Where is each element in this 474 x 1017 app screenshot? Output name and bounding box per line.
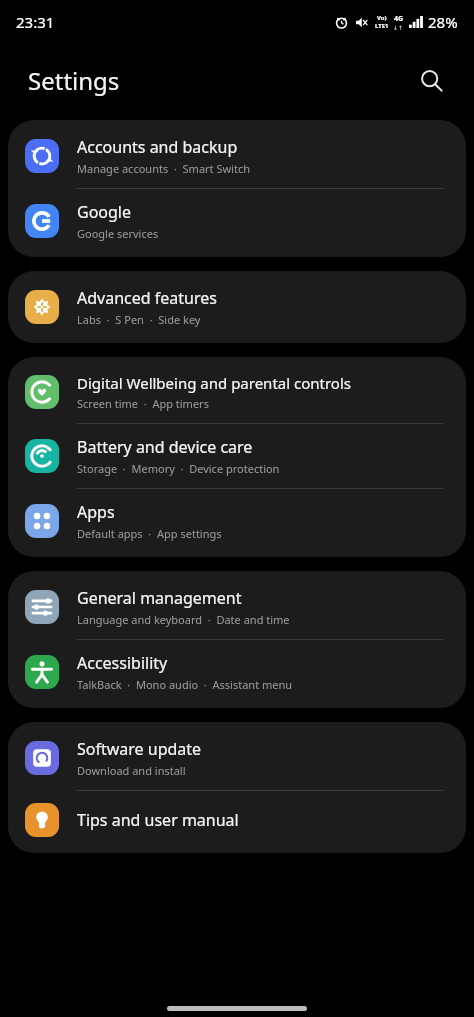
button[interactable]: Software update <box>8 726 466 790</box>
staticText: Download and install <box>77 763 186 778</box>
staticText: Manage accounts · Smart Switch <box>77 161 250 176</box>
staticText: Default apps · App settings <box>77 526 222 541</box>
staticText: 4G <box>394 14 404 24</box>
staticText: LTE1 <box>375 22 389 30</box>
button[interactable]: Battery and device care <box>8 424 466 488</box>
button[interactable]: Google <box>8 189 466 253</box>
staticText: Accounts and backup <box>77 136 238 158</box>
staticText: Google services <box>77 226 159 241</box>
staticText: 28% <box>428 12 458 32</box>
staticText: Advanced features <box>77 287 217 309</box>
staticText: Language and keyboard · Date and time <box>77 612 290 627</box>
button[interactable]: Search <box>410 59 452 101</box>
button[interactable]: Accounts and backup <box>8 124 466 188</box>
staticText: Screen time · App timers <box>77 396 209 411</box>
button[interactable]: Tips and user manual <box>8 791 466 849</box>
staticText: Labs · S Pen · Side key <box>77 312 201 327</box>
staticText: Storage · Memory · Device protection <box>77 461 280 476</box>
button[interactable]: Accessibility <box>8 640 466 704</box>
staticText: Tips and user manual <box>77 809 239 831</box>
staticText: Settings <box>28 64 120 97</box>
staticText: TalkBack · Mono audio · Assistant menu <box>77 677 293 692</box>
staticText: Google <box>77 201 132 223</box>
staticText: Battery and device care <box>77 436 253 458</box>
button[interactable]: General management <box>8 575 466 639</box>
staticText: Accessibility <box>77 652 168 674</box>
staticText: General management <box>77 587 242 609</box>
staticText: ↓↑ <box>393 24 404 31</box>
button[interactable]: Apps <box>8 489 466 553</box>
button[interactable]: Advanced features <box>8 275 466 339</box>
staticText: Apps <box>77 501 115 523</box>
staticText: 23:31 <box>16 12 55 32</box>
button[interactable]: Digital Wellbeing and parental controls <box>8 361 466 423</box>
staticText: Software update <box>77 738 202 760</box>
staticText: Vo) <box>377 14 387 22</box>
staticText: Digital Wellbeing and parental controls <box>77 373 351 393</box>
